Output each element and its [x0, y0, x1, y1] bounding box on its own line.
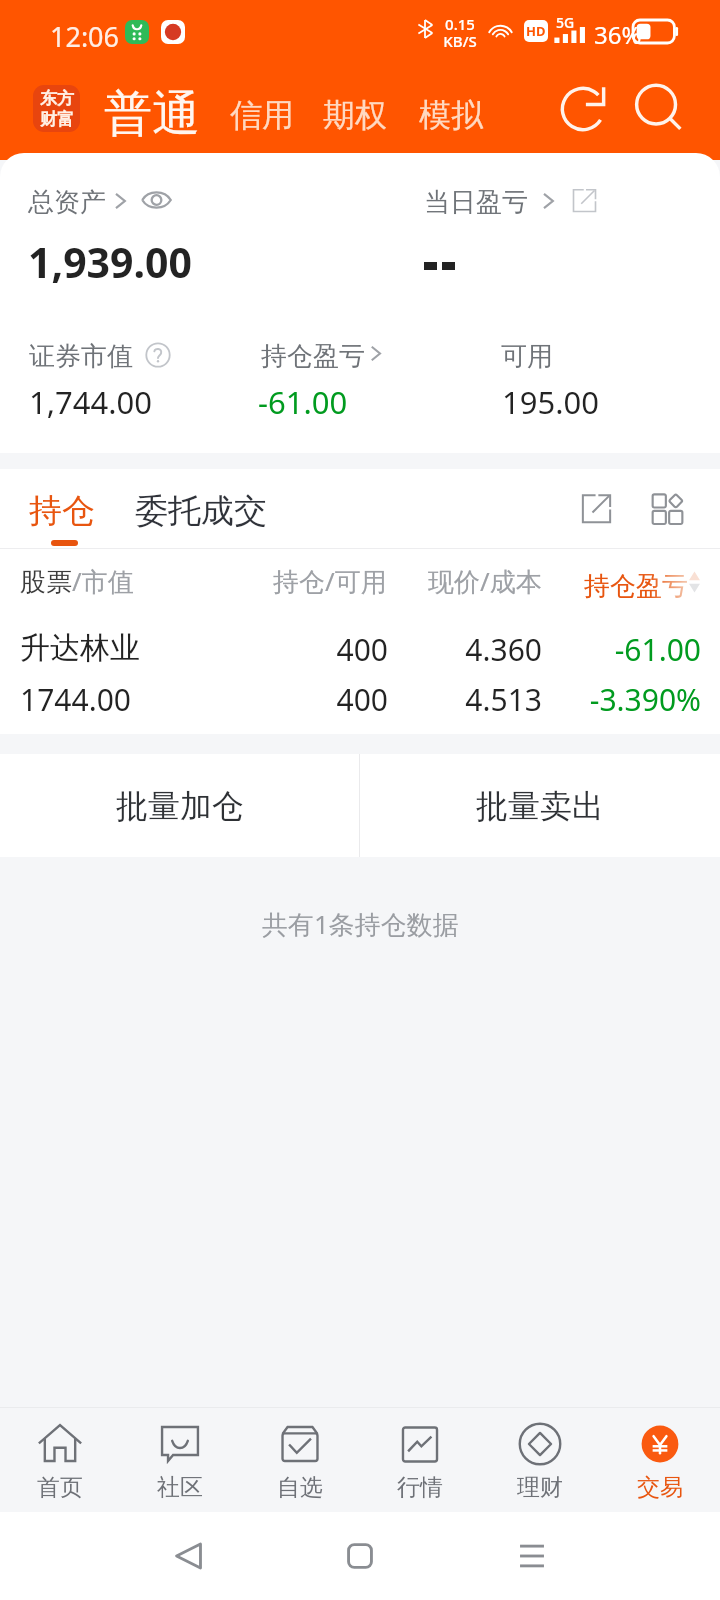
staticText: 12:06 — [50, 18, 120, 55]
staticText: 信用 — [230, 95, 294, 135]
button[interactable]: Recent apps — [506, 1530, 558, 1582]
staticText: 委托成交 — [135, 490, 267, 532]
button[interactable]: Grid view — [644, 485, 692, 533]
staticText: 1744.00 — [20, 679, 131, 720]
staticText: 持仓盈亏 — [261, 340, 365, 373]
button[interactable]: 持仓盈亏 — [576, 562, 720, 606]
button[interactable]: Back — [162, 1530, 214, 1582]
button[interactable]: Home — [334, 1530, 386, 1582]
staticText: 首页 — [37, 1473, 83, 1502]
button[interactable]: 升达林业 — [0, 620, 720, 730]
staticText: 股票/市值 — [20, 563, 134, 599]
staticText: 自选 — [277, 1473, 323, 1502]
button[interactable]: 行情 — [360, 1407, 480, 1512]
staticText: 400 — [188, 679, 388, 720]
staticText: 批量卖出 — [476, 786, 604, 826]
staticText: 财富 — [40, 109, 74, 130]
button[interactable]: Search — [634, 83, 682, 131]
staticText: 普通 — [104, 84, 200, 144]
staticText: 共有1条持仓数据 — [262, 906, 459, 942]
button[interactable]: 理财 — [480, 1407, 600, 1512]
staticText: 可用 — [501, 340, 553, 373]
staticText: 4.513 — [342, 679, 542, 720]
staticText: 行情 — [397, 1473, 443, 1502]
staticText: 400 — [188, 629, 388, 670]
staticText: 195.00 — [502, 381, 599, 423]
staticText: 证券市值 — [29, 340, 133, 373]
staticText: 东方 — [40, 88, 74, 109]
button[interactable]: 首页 — [0, 1407, 120, 1512]
button[interactable]: 批量卖出 — [360, 754, 720, 857]
staticText: HD — [526, 22, 546, 40]
staticText: 1,939.00 — [28, 234, 192, 290]
staticText: 社区 — [157, 1473, 203, 1502]
staticText: 1,744.00 — [29, 381, 153, 423]
staticText: 期权 — [323, 95, 387, 135]
button[interactable]: Refresh — [559, 85, 607, 133]
button[interactable]: 交易 — [600, 1407, 720, 1512]
staticText: -3.390% — [501, 679, 701, 720]
staticText: 0.15 KB/S — [443, 14, 477, 52]
staticText: 模拟 — [419, 95, 483, 135]
staticText: 当日盈亏 — [424, 186, 528, 219]
staticText: 现价/成本 — [428, 563, 542, 599]
button[interactable]: Open in new window — [572, 484, 620, 532]
staticText: -61.00 — [258, 381, 348, 423]
button[interactable]: 当日盈亏 — [414, 180, 614, 222]
staticText: 持仓/可用 — [273, 563, 387, 599]
staticText: 5G — [556, 13, 575, 32]
staticText: 升达林业 — [20, 629, 140, 667]
button[interactable]: 批量加仓 — [0, 754, 359, 857]
staticText: 交易 — [637, 1473, 683, 1502]
staticText: -61.00 — [501, 629, 701, 670]
button[interactable]: 委托成交 — [135, 490, 267, 532]
button[interactable]: 持仓 — [18, 483, 104, 549]
staticText: 理财 — [517, 1473, 563, 1502]
button[interactable]: 总资产 — [20, 180, 185, 222]
button[interactable]: 自选 — [240, 1407, 360, 1512]
button[interactable]: 证券市值 — [20, 334, 185, 374]
button[interactable]: 社区 — [120, 1407, 240, 1512]
staticText: 4.360 — [342, 629, 542, 670]
button[interactable]: 持仓盈亏 — [252, 334, 397, 374]
staticText: 36% — [594, 18, 642, 51]
staticText: 持仓 — [29, 490, 95, 532]
staticText: 持仓盈亏 — [584, 570, 688, 603]
button[interactable]: East Money logo — [33, 85, 80, 132]
staticText: 总资产 — [28, 186, 106, 219]
staticText: 批量加仓 — [116, 786, 244, 826]
